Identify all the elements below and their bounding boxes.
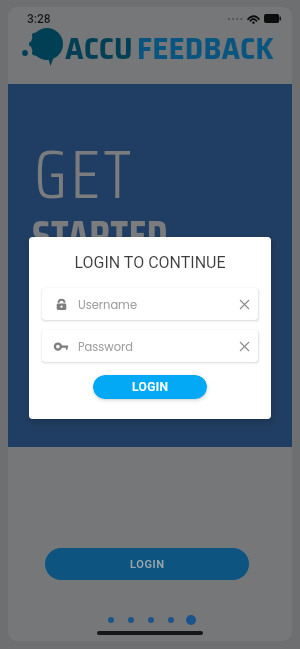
staticText: STARTED (32, 202, 169, 268)
staticText: GET (34, 121, 135, 228)
staticText: LOGIN (130, 558, 165, 571)
button[interactable]: Password (42, 330, 258, 362)
staticText: LOGIN TO CONTINUE (29, 253, 271, 272)
button[interactable]: Username (42, 288, 258, 320)
staticText: LOGIN (132, 380, 169, 394)
staticText: Username (78, 295, 138, 313)
staticText: 3:28 (27, 12, 51, 26)
staticText: ACCU (65, 24, 133, 73)
button[interactable]: Clear Password (234, 336, 254, 356)
button[interactable]: LOGIN (45, 548, 249, 580)
button[interactable]: LOGIN (93, 375, 207, 399)
button[interactable]: Clear Username (234, 294, 254, 314)
staticText: FEEDBACK (137, 24, 274, 73)
staticText: Password (78, 337, 133, 355)
